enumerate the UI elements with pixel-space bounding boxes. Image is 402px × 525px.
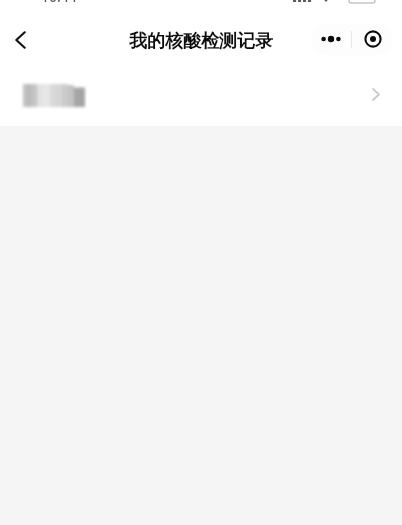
button[interactable]: Test record entry [0, 62, 402, 126]
button[interactable]: More options [311, 23, 351, 55]
button[interactable]: Close mini program [352, 23, 393, 55]
button[interactable]: Back [2, 21, 39, 58]
staticText: 我的核酸检测记录 [129, 30, 273, 53]
staticText: 10:44 [41, 0, 77, 6]
